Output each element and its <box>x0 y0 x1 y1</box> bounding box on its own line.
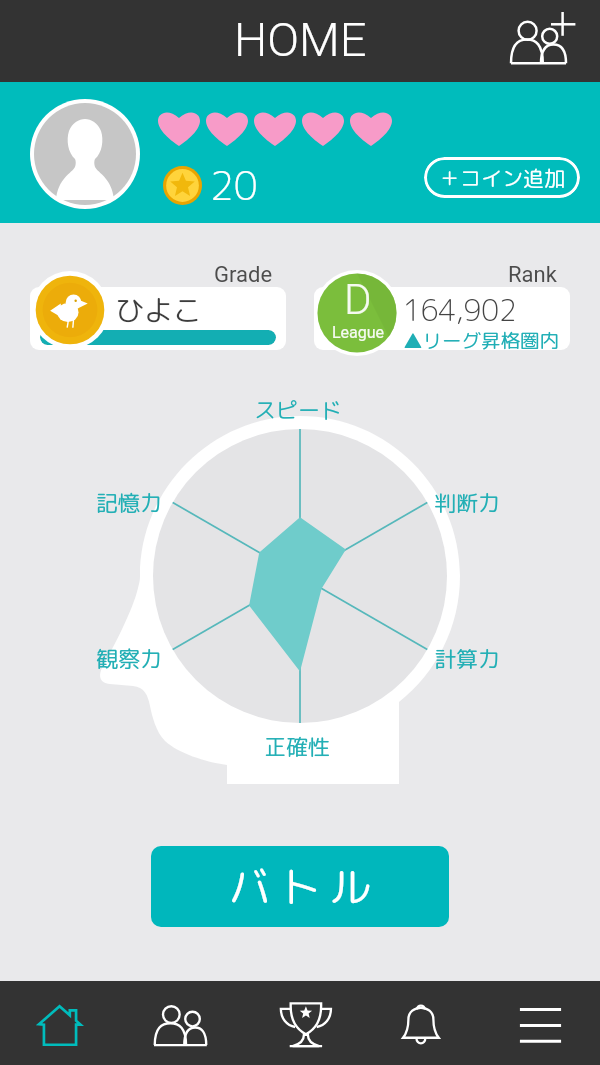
staticText: 164,902 <box>403 290 517 330</box>
button[interactable]: 164,902 <box>314 287 570 350</box>
button[interactable]: Notifications <box>360 981 480 1065</box>
staticText: 記憶力 <box>96 487 163 518</box>
staticText: Grade <box>214 262 273 288</box>
staticText: バトル <box>229 857 380 916</box>
button[interactable]: Home <box>0 981 120 1065</box>
staticText: 観察力 <box>96 643 163 674</box>
button[interactable]: バトル <box>151 846 449 927</box>
button[interactable]: League D <box>314 270 400 356</box>
button[interactable]: ひよこ <box>30 287 286 350</box>
staticText: 20 <box>210 158 258 212</box>
button[interactable]: Profile <box>30 99 140 209</box>
staticText: ひよこ <box>115 290 203 330</box>
staticText: スピード <box>254 394 343 425</box>
button[interactable]: ＋コイン追加 <box>424 157 580 198</box>
button[interactable]: Menu <box>480 981 600 1065</box>
staticText: Rank <box>508 262 557 288</box>
button[interactable]: Ranking <box>240 981 360 1065</box>
staticText: 判断力 <box>434 487 501 518</box>
staticText: D <box>344 275 372 324</box>
staticText: 正確性 <box>264 731 331 762</box>
staticText: ＋コイン追加 <box>439 163 565 192</box>
button[interactable]: Friends <box>120 981 240 1065</box>
staticText: 計算力 <box>434 643 501 674</box>
staticText: ▲リーグ昇格圏内 <box>403 327 560 350</box>
staticText: League <box>332 323 385 342</box>
button[interactable]: Add friend <box>511 5 576 70</box>
staticText: HOME <box>234 12 367 67</box>
